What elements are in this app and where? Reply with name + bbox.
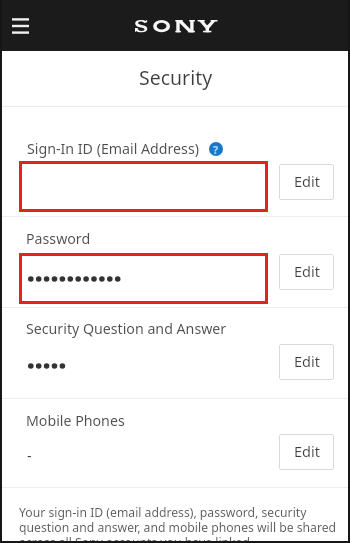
button[interactable]: Help: [209, 142, 223, 156]
button[interactable]: Edit: [279, 254, 334, 290]
staticText: Sign-In ID (Email Address): [27, 139, 199, 158]
staticText: Mobile Phones: [26, 411, 125, 430]
button[interactable]: Edit: [279, 344, 334, 380]
staticText: -: [27, 446, 32, 465]
staticText: Password: [26, 229, 91, 248]
staticText: Security: [139, 64, 213, 91]
staticText: ?: [213, 142, 219, 156]
button[interactable]: Edit: [279, 434, 334, 470]
staticText: Edit: [294, 351, 320, 371]
button[interactable]: Open navigation menu: [1, 7, 39, 45]
staticText: Edit: [294, 171, 320, 191]
staticText: Edit: [294, 441, 320, 461]
staticText: Your sign-in ID (email address), passwor…: [19, 504, 344, 543]
staticText: Security Question and Answer: [26, 319, 227, 338]
staticText: Edit: [294, 261, 320, 281]
button[interactable]: Edit: [279, 164, 334, 200]
